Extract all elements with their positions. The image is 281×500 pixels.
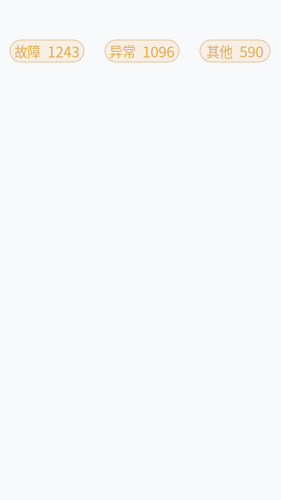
staticText: 故障 (14, 41, 40, 61)
staticText: 590 (239, 40, 263, 62)
staticText: 异常 (109, 41, 135, 61)
button[interactable]: 故障 (10, 40, 84, 62)
staticText: 其他 (206, 41, 232, 61)
button[interactable]: 异常 (105, 40, 179, 62)
staticText: 1243 (47, 40, 79, 62)
button[interactable]: 其他 (200, 40, 270, 62)
staticText: 1096 (142, 40, 174, 62)
